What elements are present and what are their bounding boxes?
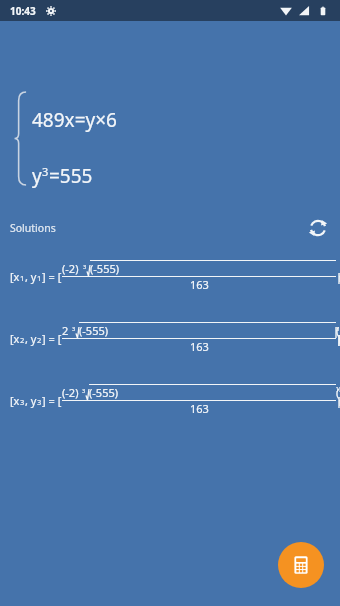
staticText: (-555) xyxy=(79,323,109,338)
staticText: (-2) xyxy=(62,385,79,400)
staticText: 10:43 xyxy=(10,4,36,18)
staticText: , y xyxy=(25,269,37,284)
staticText: 163 xyxy=(190,401,209,416)
staticText: 3 xyxy=(37,397,42,407)
button[interactable]: [x xyxy=(0,369,340,431)
staticText: 1 xyxy=(20,273,25,283)
staticText: 1 xyxy=(37,273,42,283)
staticText: ] = [ xyxy=(42,269,62,284)
staticText: , y xyxy=(25,393,37,408)
staticText: 163 xyxy=(190,277,209,292)
staticText: , y xyxy=(25,331,37,346)
staticText: 3 xyxy=(83,263,87,271)
staticText: (-2) xyxy=(62,261,79,276)
staticText: 2 xyxy=(20,335,25,345)
staticText: (-555) xyxy=(89,385,119,400)
staticText: 3 xyxy=(20,397,25,407)
button[interactable]: Open calculator xyxy=(278,542,324,588)
staticText: [x xyxy=(10,393,20,408)
staticText: 489x=y×6 xyxy=(32,107,117,133)
staticText: 163 xyxy=(190,339,209,354)
button[interactable]: 489x=y×6 xyxy=(0,21,340,211)
button[interactable]: Refresh solutions xyxy=(304,214,332,242)
staticText: [x xyxy=(10,331,20,346)
staticText: 3 xyxy=(72,325,76,333)
staticText: ] = [ xyxy=(42,393,62,408)
staticText: (-555) xyxy=(90,261,120,276)
staticText: 2 xyxy=(37,335,42,345)
button[interactable]: [x xyxy=(0,307,340,369)
button[interactable]: [x xyxy=(0,245,340,307)
staticText: Solutions xyxy=(10,221,56,235)
staticText: y xyxy=(32,163,42,189)
staticText: ] = [ xyxy=(42,331,62,346)
staticText: [x xyxy=(10,269,20,284)
staticText: =555 xyxy=(49,163,93,189)
staticText: 3 xyxy=(42,164,49,179)
staticText: 2 xyxy=(62,323,69,338)
staticText: 3 xyxy=(82,387,86,395)
